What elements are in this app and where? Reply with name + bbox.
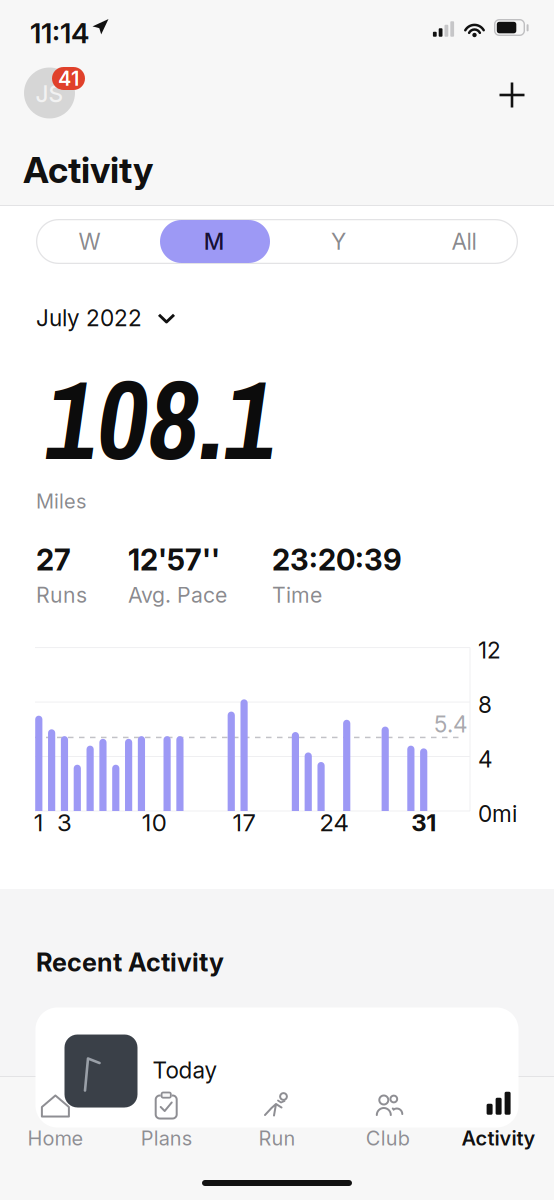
staticText: 23:20:39: [272, 542, 402, 577]
button[interactable]: Profile: [24, 67, 100, 129]
button[interactable]: Activity: [443, 1080, 554, 1160]
staticText: 4: [478, 745, 493, 773]
staticText: W: [78, 228, 100, 255]
staticText: M: [204, 228, 225, 255]
staticText: Home: [27, 1126, 83, 1150]
staticText: All: [452, 228, 477, 255]
staticText: 12'57'': [128, 542, 220, 577]
staticText: 12: [478, 637, 501, 664]
staticText: JS: [35, 80, 63, 108]
staticText: Club: [366, 1126, 410, 1150]
staticText: Plans: [141, 1126, 192, 1150]
staticText: 10: [142, 808, 167, 837]
button[interactable]: All: [405, 219, 523, 264]
staticText: Recent Activity: [36, 947, 224, 978]
button[interactable]: W: [30, 219, 148, 264]
button[interactable]: Club: [332, 1080, 443, 1160]
staticText: 1: [34, 808, 44, 837]
staticText: July 2022: [36, 304, 142, 332]
staticText: Miles: [36, 489, 86, 513]
staticText: 24: [319, 808, 348, 837]
staticText: Y: [331, 228, 346, 255]
staticText: Runs: [36, 582, 87, 608]
staticText: Run: [258, 1126, 295, 1150]
staticText: 3: [57, 808, 72, 837]
button[interactable]: Y: [280, 219, 398, 264]
staticText: Time: [272, 582, 322, 608]
staticText: Avg. Pace: [128, 582, 227, 608]
staticText: 41: [58, 66, 79, 91]
button[interactable]: Home: [0, 1080, 111, 1160]
button[interactable]: M: [155, 219, 273, 264]
staticText: 31: [411, 808, 436, 837]
staticText: Activity: [462, 1126, 536, 1150]
staticText: 108.1: [46, 343, 276, 494]
staticText: Today: [152, 1056, 217, 1084]
button[interactable]: Today: [35, 1007, 518, 1127]
staticText: 11:14: [30, 16, 89, 50]
staticText: 8: [478, 691, 492, 718]
staticText: 27: [36, 542, 71, 577]
staticText: Activity: [23, 148, 153, 192]
staticText: 5.4: [434, 710, 468, 738]
staticText: 17: [233, 808, 256, 837]
button[interactable]: Run: [222, 1080, 332, 1160]
button[interactable]: July 2022: [36, 303, 176, 333]
staticText: 0mi: [478, 800, 517, 827]
button[interactable]: New activity: [490, 73, 534, 117]
button[interactable]: Plans: [111, 1080, 222, 1160]
